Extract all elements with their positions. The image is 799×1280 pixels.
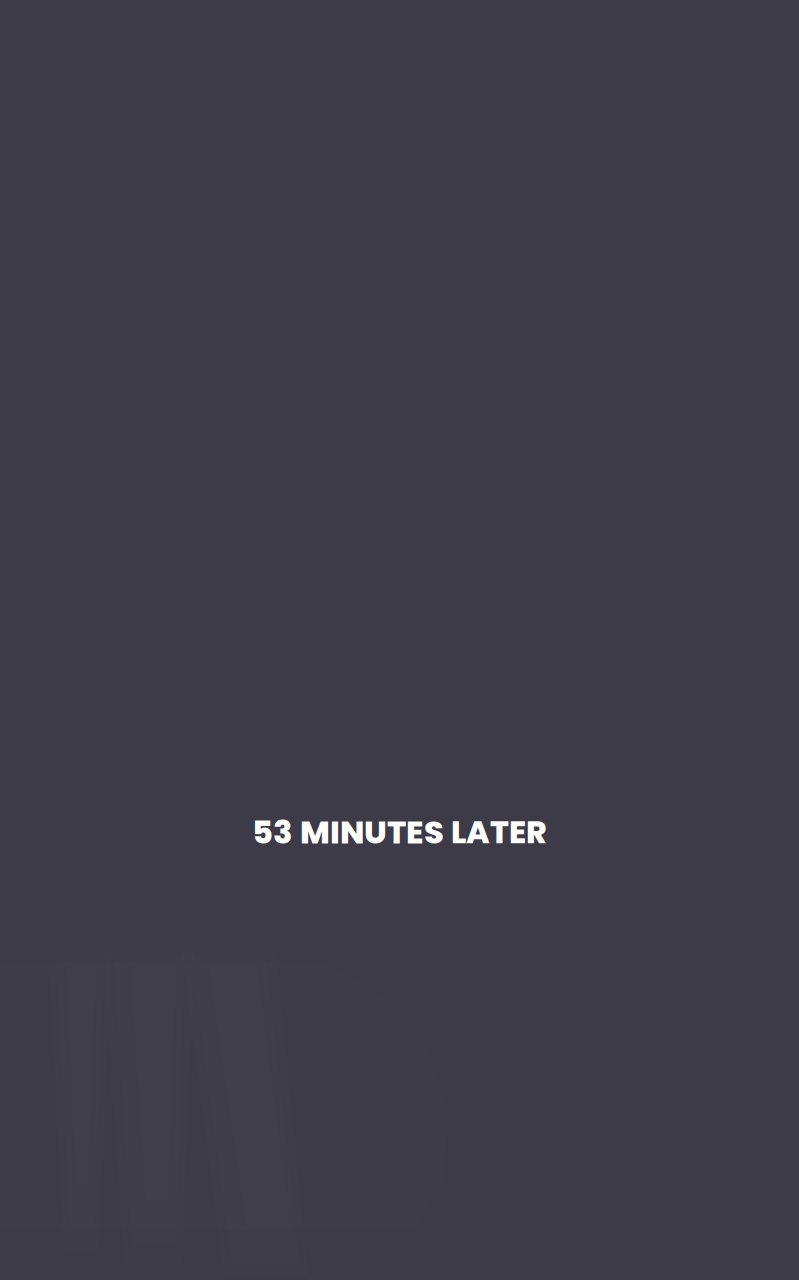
staticText: LATER (451, 810, 547, 854)
staticText: MINUTES (300, 810, 444, 855)
staticText: 53 (252, 810, 293, 855)
